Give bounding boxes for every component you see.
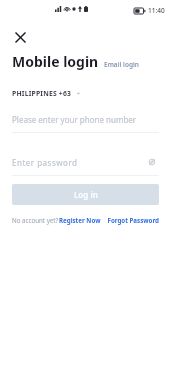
button[interactable]: Register Now (59, 216, 101, 224)
staticText: No account yet? (12, 216, 59, 224)
staticText: Please enter your phone number (12, 114, 137, 125)
staticText: Email login (104, 60, 139, 69)
button[interactable]: Email login (104, 60, 139, 71)
staticText: Register Now (59, 216, 101, 224)
staticText: Forgot Password (107, 216, 159, 224)
staticText: Log in (74, 189, 98, 200)
button[interactable]: Forgot Password (107, 216, 159, 224)
staticText: 11:40 (148, 6, 165, 15)
button[interactable]: Please enter your phone number (12, 112, 159, 133)
button[interactable]: Close (9, 26, 31, 48)
staticText: Enter password (12, 157, 78, 168)
button[interactable]: PHILIPPINES +63 (12, 89, 81, 98)
button[interactable]: Enter password (12, 157, 145, 168)
button[interactable]: Show password (145, 155, 159, 169)
staticText: Mobile login (12, 52, 99, 71)
button[interactable]: Log in (12, 184, 159, 205)
staticText: PHILIPPINES +63 (12, 89, 72, 98)
